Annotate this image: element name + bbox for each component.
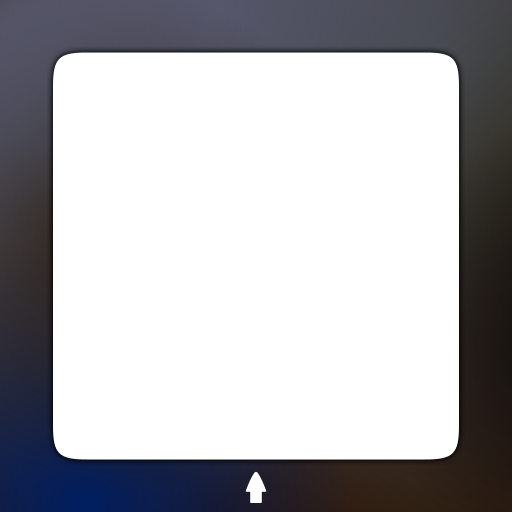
button[interactable]: Swipe up to continue (229, 464, 283, 512)
